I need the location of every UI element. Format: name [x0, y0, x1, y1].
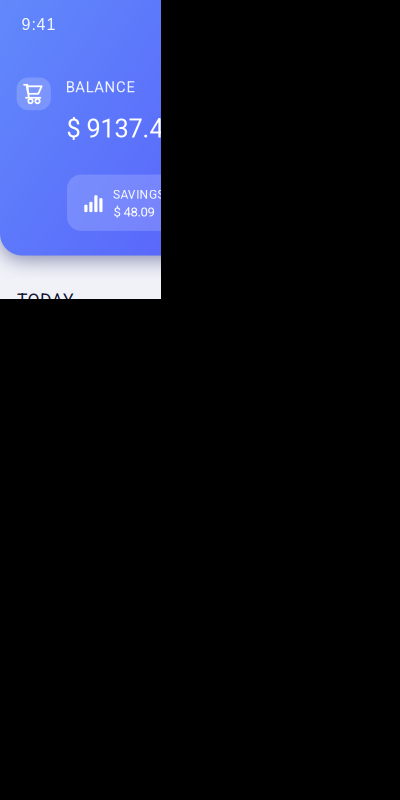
button[interactable]: Savings [67, 175, 242, 231]
staticText: SAVINGS [113, 188, 164, 202]
staticText: $ 9137.40 [66, 114, 177, 144]
staticText: BALANCE [66, 78, 134, 96]
staticText: TODAY [17, 290, 74, 311]
button[interactable]: Shop [17, 77, 51, 110]
staticText: 9:41 [22, 16, 56, 33]
staticText: $ 48.09 [114, 204, 155, 220]
